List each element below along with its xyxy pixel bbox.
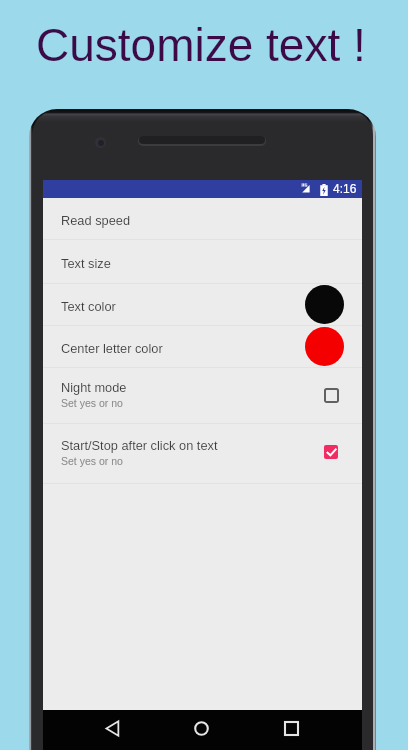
staticText: Text size [61,256,111,270]
button[interactable]: Home [183,710,220,746]
staticText: Set yes or no [61,455,123,467]
staticText: Start/Stop after click on text [61,438,218,452]
button[interactable]: Recents [273,710,310,746]
staticText: Read speed [61,213,131,227]
button[interactable]: Text size [43,240,362,283]
staticText: Center letter color [61,341,163,355]
staticText: Text color [61,299,116,313]
button[interactable]: Start/Stop after click on text [43,424,362,483]
button[interactable]: Night mode [43,368,362,423]
button[interactable]: Center letter color [43,326,362,367]
staticText: Night mode [61,380,127,394]
button[interactable]: Unchecked [320,384,342,406]
button[interactable]: Read speed [43,198,362,239]
staticText: Customize text ! [36,19,366,70]
staticText: Set yes or no [61,397,123,409]
button[interactable]: Checked [320,441,342,463]
button[interactable]: Back [94,710,131,746]
button[interactable]: Text color [43,284,362,325]
staticText: 4:16 [333,182,357,195]
